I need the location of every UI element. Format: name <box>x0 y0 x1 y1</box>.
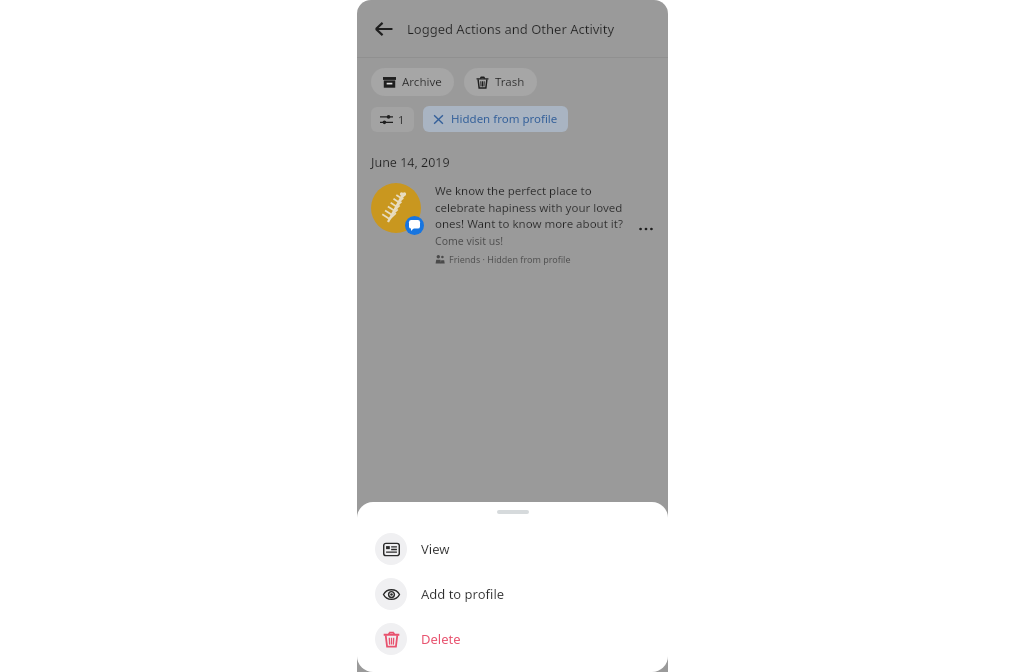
staticText: Hidden from profile <box>451 111 558 127</box>
staticText: We know the perfect place to celebrate h… <box>435 183 634 231</box>
button[interactable]: More options <box>634 217 658 241</box>
button[interactable]: Delete <box>357 616 668 661</box>
button[interactable]: Add to profile <box>357 571 668 616</box>
staticText: Delete <box>421 630 461 648</box>
staticText: June 14, 2019 <box>371 154 450 171</box>
staticText: View <box>421 540 450 558</box>
button[interactable]: Back <box>371 16 397 42</box>
button[interactable]: We know the perfect place to celebrate h… <box>357 171 668 265</box>
staticText: 1 <box>398 112 405 127</box>
staticText: Archive <box>402 74 442 90</box>
button[interactable]: Archive <box>371 68 454 96</box>
button[interactable]: Trash <box>464 68 537 96</box>
staticText: Trash <box>495 74 525 90</box>
button[interactable]: 1 <box>371 107 414 132</box>
button[interactable]: View <box>357 526 668 571</box>
button[interactable]: Hidden from profile <box>423 106 568 132</box>
staticText: Come visit us! <box>435 234 504 248</box>
staticText: Logged Actions and Other Activity <box>407 20 615 38</box>
staticText: Add to profile <box>421 585 505 603</box>
staticText: Friends · Hidden from profile <box>449 253 571 265</box>
